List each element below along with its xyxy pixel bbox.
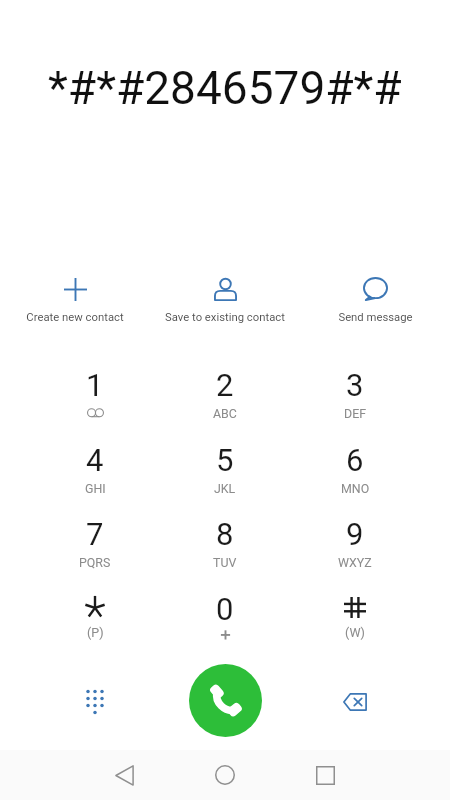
button[interactable]: Back <box>100 751 148 799</box>
button[interactable]: Recents <box>301 751 349 799</box>
button[interactable]: 1 <box>33 364 157 434</box>
staticText: 9 <box>346 516 364 552</box>
staticText: Create new contact <box>26 311 124 324</box>
button[interactable]: 4 <box>33 439 157 509</box>
staticText: *#*#2846579#*# <box>48 61 402 115</box>
staticText: GHI <box>85 481 106 496</box>
staticText: PQRS <box>79 555 111 570</box>
button[interactable]: Home <box>201 751 249 799</box>
button[interactable]: Call <box>189 664 262 737</box>
staticText: 3 <box>346 367 364 403</box>
staticText: 0 <box>216 591 234 627</box>
staticText: 5 <box>216 442 234 478</box>
staticText: 1 <box>86 367 104 403</box>
button[interactable]: 0 <box>163 588 287 658</box>
button[interactable]: 8 <box>163 513 287 583</box>
button[interactable]: Send message <box>310 268 440 330</box>
staticText: 2 <box>216 367 234 403</box>
button[interactable]: Save to existing contact <box>160 268 290 330</box>
staticText: TUV <box>213 555 237 570</box>
staticText: MNO <box>341 481 370 496</box>
button[interactable]: 7 <box>33 513 157 583</box>
staticText: 6 <box>346 442 364 478</box>
button[interactable]: Create new contact <box>10 268 140 330</box>
button[interactable]: 2 <box>163 364 287 434</box>
staticText: 7 <box>86 516 104 552</box>
staticText: 8 <box>216 516 234 552</box>
button[interactable]: (P) <box>33 588 157 658</box>
button[interactable]: 6 <box>293 439 417 509</box>
button[interactable]: Backspace <box>325 672 385 732</box>
staticText: (W) <box>345 625 365 640</box>
button[interactable]: Hide dialpad <box>65 672 125 732</box>
button[interactable]: 9 <box>293 513 417 583</box>
staticText: 4 <box>86 442 104 478</box>
staticText: ABC <box>213 406 237 421</box>
button[interactable]: 3 <box>293 364 417 434</box>
staticText: WXYZ <box>338 555 372 570</box>
staticText: (P) <box>87 625 104 640</box>
staticText: DEF <box>344 406 367 421</box>
button[interactable]: 5 <box>163 439 287 509</box>
button[interactable]: (W) <box>293 588 417 658</box>
staticText: JKL <box>214 481 236 496</box>
staticText: Save to existing contact <box>165 311 285 324</box>
staticText: Send message <box>338 311 413 324</box>
